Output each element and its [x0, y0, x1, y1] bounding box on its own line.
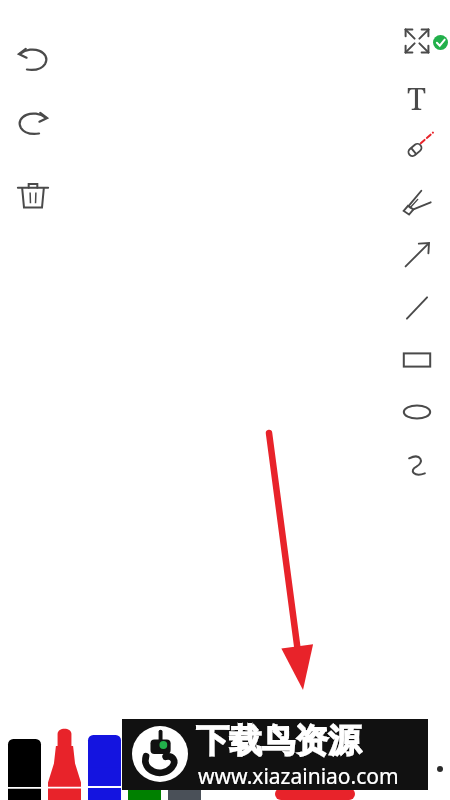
button[interactable]: Undo	[8, 36, 58, 84]
button[interactable]: Line tool	[392, 286, 442, 330]
button[interactable]	[88, 735, 121, 800]
staticText: 下载鸟资源	[196, 720, 361, 762]
button[interactable]	[8, 739, 41, 800]
button[interactable]	[275, 788, 355, 800]
staticText: T	[407, 77, 427, 119]
button[interactable]: Delete	[8, 172, 58, 220]
button[interactable]: Arrow tool	[392, 232, 442, 278]
button[interactable]: Pen tool	[392, 124, 442, 170]
button[interactable]: Freehand tool	[392, 442, 442, 488]
button[interactable]: Fullscreen	[392, 18, 442, 64]
button[interactable]: Rectangle tool	[392, 338, 442, 382]
button[interactable]	[168, 762, 201, 800]
staticText: www.xiazainiao.com	[198, 762, 399, 791]
button[interactable]: Redo	[8, 100, 58, 148]
button[interactable]: Ellipse tool	[392, 390, 442, 434]
button[interactable]	[128, 735, 161, 800]
button[interactable]: Marker tool	[392, 180, 442, 226]
button[interactable]: Text tool	[392, 76, 442, 120]
button[interactable]	[48, 727, 81, 800]
